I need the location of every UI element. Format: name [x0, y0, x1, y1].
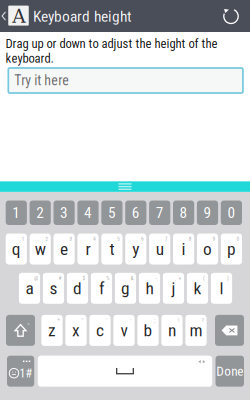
staticText: w: [35, 239, 46, 259]
button[interactable]: Symbols and emoji: [7, 356, 34, 387]
button[interactable]: 9: [197, 200, 218, 225]
button[interactable]: j: [163, 273, 184, 304]
button[interactable]: Try it here: [8, 68, 243, 93]
button[interactable]: 0: [221, 200, 242, 225]
staticText: 2: [45, 236, 48, 242]
button[interactable]: 3: [53, 200, 75, 225]
button[interactable]: t: [101, 233, 122, 264]
button[interactable]: 8: [173, 200, 194, 225]
button[interactable]: l: [211, 273, 232, 304]
staticText: 0: [227, 204, 235, 222]
staticText: 4: [93, 236, 96, 242]
staticText: ): [227, 275, 229, 281]
button[interactable]: h: [139, 273, 160, 304]
button[interactable]: x: [65, 315, 87, 346]
staticText: y: [132, 239, 139, 259]
button[interactable]: q: [6, 233, 27, 264]
staticText: +: [179, 275, 182, 281]
staticText: Done: [216, 363, 243, 379]
button[interactable]: s: [43, 273, 64, 304]
staticText: q: [12, 239, 21, 259]
staticText: 0: [236, 236, 239, 242]
button[interactable]: k: [187, 273, 208, 304]
staticText: n: [168, 320, 176, 340]
button[interactable]: g: [115, 273, 136, 304]
staticText: e: [60, 239, 68, 259]
staticText: ": [82, 317, 84, 324]
staticText: b: [143, 320, 152, 340]
staticText: 8: [180, 204, 188, 222]
staticText: p: [227, 239, 236, 259]
staticText: t: [109, 239, 114, 259]
staticText: k: [193, 278, 201, 298]
staticText: %: [106, 275, 110, 281]
staticText: A: [12, 5, 25, 27]
staticText: v: [120, 320, 127, 340]
staticText: ⌃: [26, 322, 30, 328]
staticText: a: [25, 278, 33, 298]
staticText: 6: [132, 204, 140, 222]
staticText: 6: [141, 236, 144, 242]
staticText: 4: [84, 204, 92, 222]
button[interactable]: 5: [101, 200, 122, 225]
staticText: ?: [202, 317, 204, 324]
staticText: j: [171, 278, 175, 298]
button[interactable]: r: [77, 233, 99, 264]
staticText: 3: [69, 236, 72, 242]
staticText: 1#: [19, 366, 32, 381]
staticText: @: [34, 275, 38, 281]
button[interactable]: u: [149, 233, 170, 264]
button[interactable]: y: [125, 233, 146, 264]
staticText: z: [48, 320, 56, 340]
staticText: 5: [117, 236, 120, 242]
button[interactable]: Shift: [6, 315, 35, 346]
button[interactable]: d: [67, 273, 88, 304]
staticText: h: [145, 278, 153, 298]
staticText: i: [182, 239, 186, 259]
button[interactable]: Backspace: [215, 315, 244, 346]
staticText: 3: [60, 204, 68, 222]
button[interactable]: i: [173, 233, 194, 264]
staticText: Try it here: [14, 72, 69, 89]
button[interactable]: p: [221, 233, 242, 264]
staticText: 1: [12, 204, 20, 222]
staticText: 9: [203, 204, 211, 222]
button[interactable]: o: [197, 233, 218, 264]
button[interactable]: w: [30, 233, 51, 264]
staticText: (: [203, 275, 205, 281]
button[interactable]: Done: [215, 356, 244, 387]
button[interactable]: 2: [30, 200, 51, 225]
button[interactable]: b: [137, 315, 159, 346]
button[interactable]: m: [185, 315, 207, 346]
staticText: ;: [154, 317, 155, 324]
button[interactable]: c: [89, 315, 111, 346]
button[interactable]: Back: [0, 0, 34, 32]
button[interactable]: 6: [125, 200, 146, 225]
button[interactable]: 1: [6, 200, 27, 225]
button[interactable]: a: [19, 273, 40, 304]
staticText: -: [156, 275, 157, 281]
button[interactable]: z: [41, 315, 63, 346]
staticText: 7: [165, 236, 168, 242]
staticText: u: [156, 239, 164, 259]
button[interactable]: Space: [38, 356, 212, 387]
button[interactable]: v: [113, 315, 135, 346]
staticText: $: [83, 275, 86, 281]
staticText: #: [59, 275, 62, 281]
staticText: Drag up or down to adjust the height of …: [5, 36, 217, 66]
button[interactable]: n: [161, 315, 183, 346]
staticText: c: [96, 320, 104, 340]
button[interactable]: Reset keyboard height: [215, 0, 247, 32]
button[interactable]: 7: [149, 200, 170, 225]
staticText: d: [73, 278, 82, 298]
staticText: o: [203, 239, 212, 259]
staticText: !: [178, 317, 179, 324]
button[interactable]: e: [53, 233, 75, 264]
staticText: 2: [36, 204, 44, 222]
staticText: r: [85, 239, 90, 259]
button[interactable]: f: [91, 273, 112, 304]
staticText: l: [219, 278, 223, 298]
staticText: &: [131, 275, 134, 281]
button[interactable]: 4: [77, 200, 99, 225]
staticText: 8: [189, 236, 192, 242]
